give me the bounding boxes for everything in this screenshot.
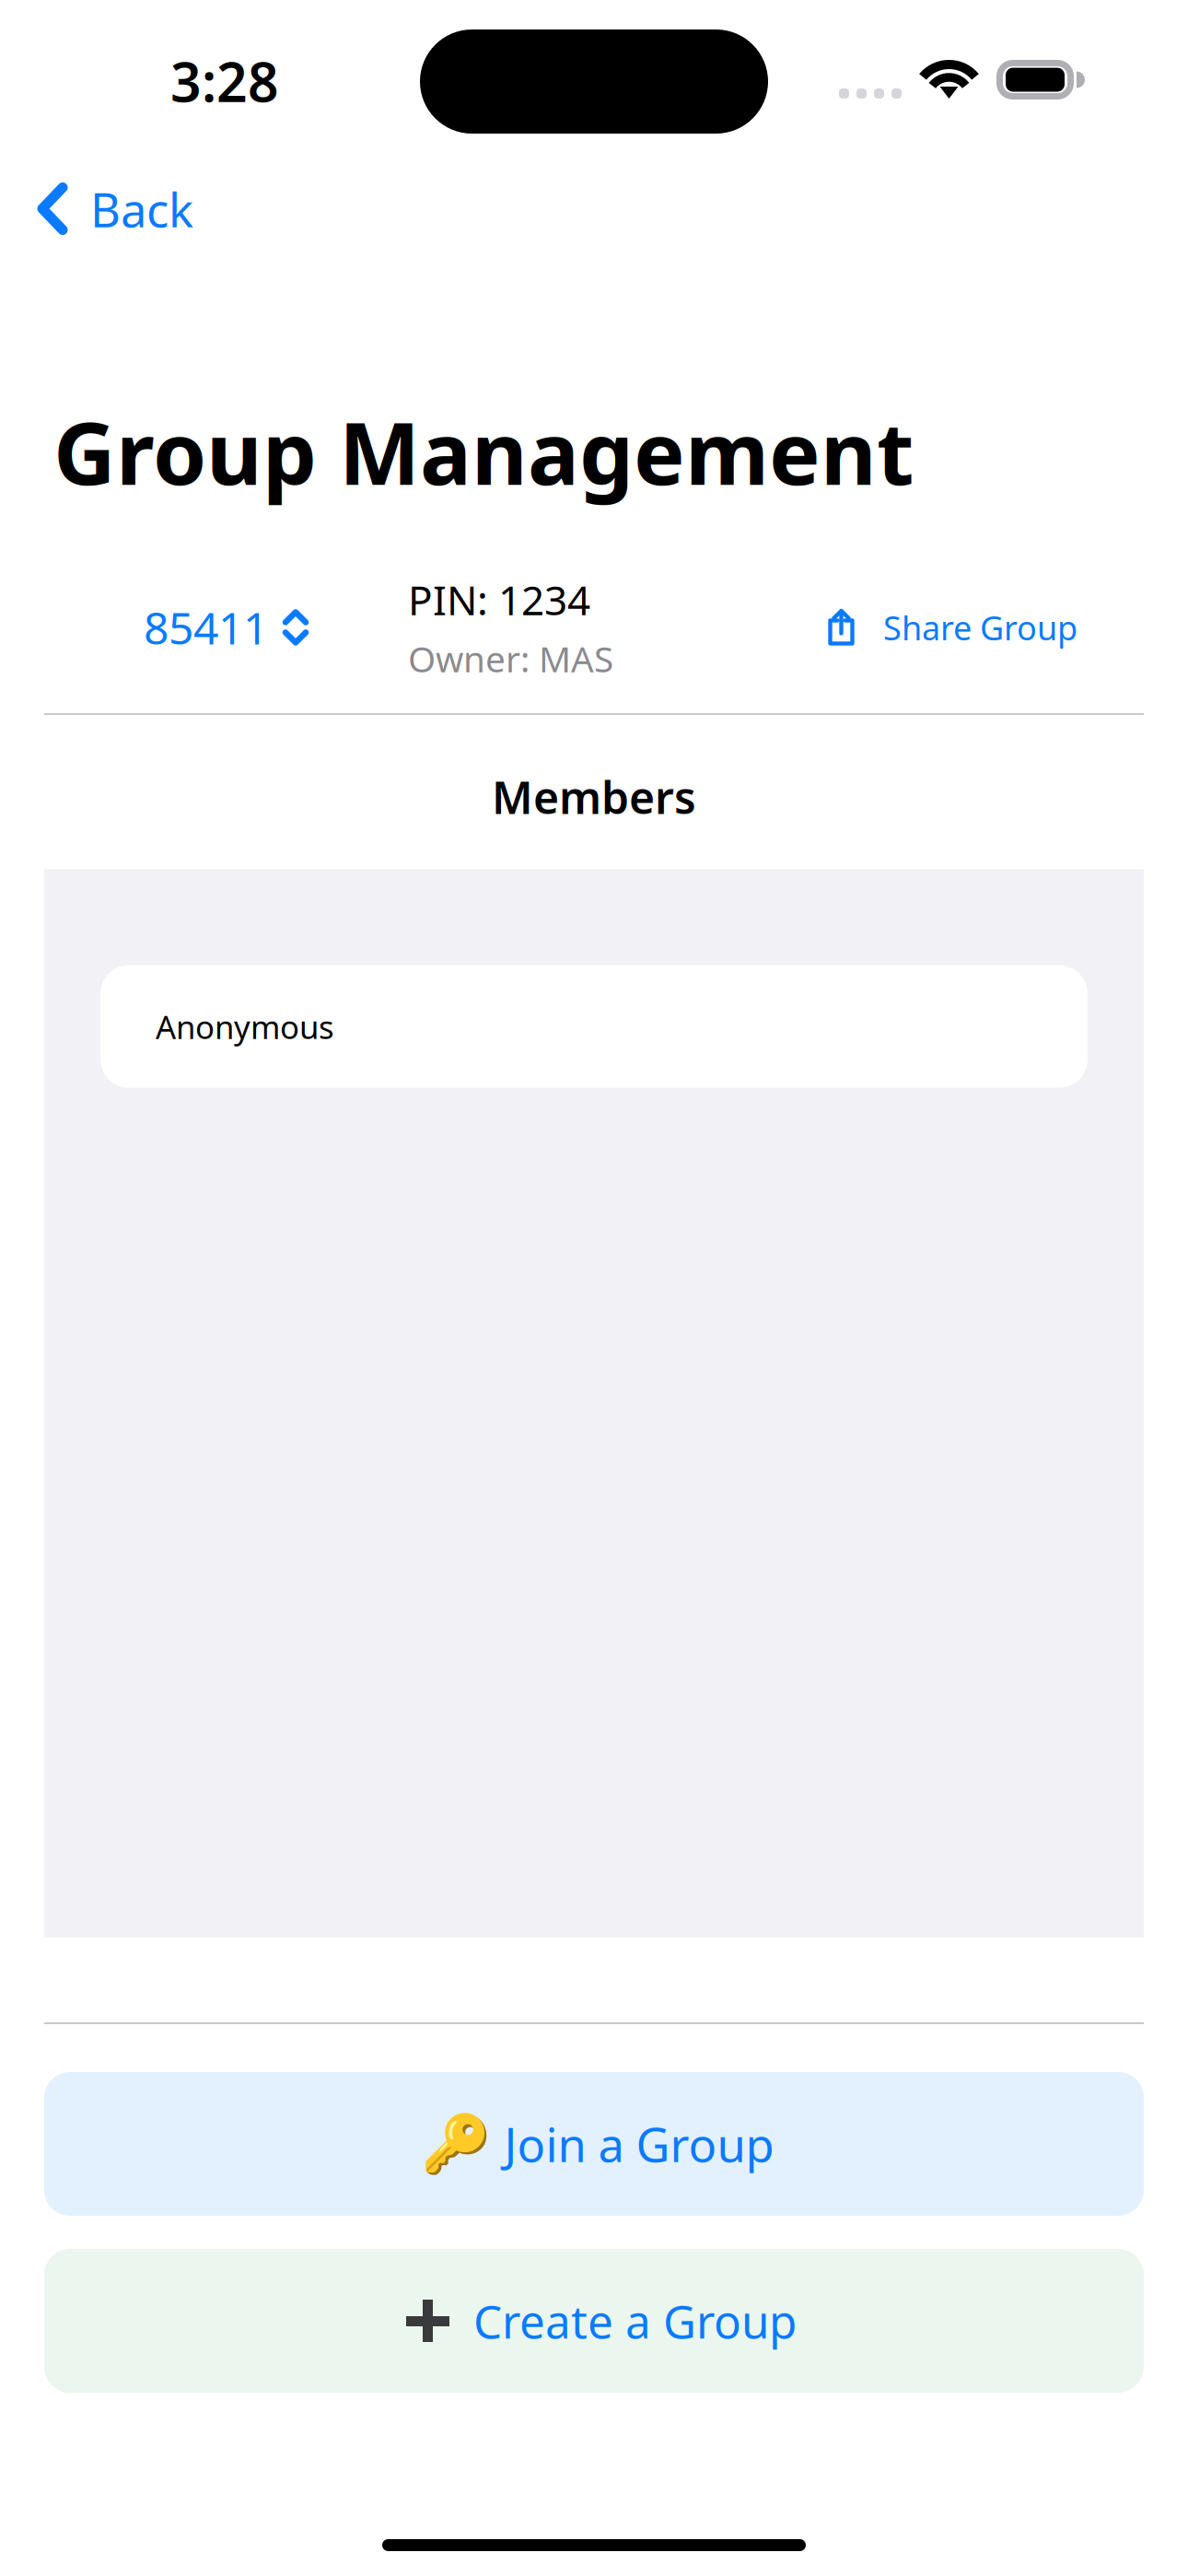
staticText: 🔑	[420, 2112, 490, 2176]
staticText: Back	[90, 178, 193, 240]
staticText: PIN: 1234	[408, 573, 590, 626]
staticText: 85411	[144, 598, 268, 657]
staticText: Group Management	[53, 394, 914, 508]
button[interactable]: Share Group	[827, 577, 1101, 678]
button[interactable]: Create a Group	[44, 2249, 1144, 2393]
staticText: 3:28	[170, 45, 279, 117]
button[interactable]: Anonymous	[100, 965, 1088, 1088]
staticText: Create a Group	[473, 2291, 797, 2351]
staticText: Owner: MAS	[408, 635, 613, 682]
button[interactable]: 85411	[0, 577, 340, 678]
button[interactable]: Back	[0, 163, 215, 255]
staticText: Join a Group	[504, 2113, 774, 2175]
button[interactable]: 🔑	[44, 2072, 1144, 2216]
staticText: Anonymous	[156, 1005, 334, 1048]
staticText: Members	[492, 767, 696, 826]
staticText: Share Group	[883, 605, 1077, 649]
